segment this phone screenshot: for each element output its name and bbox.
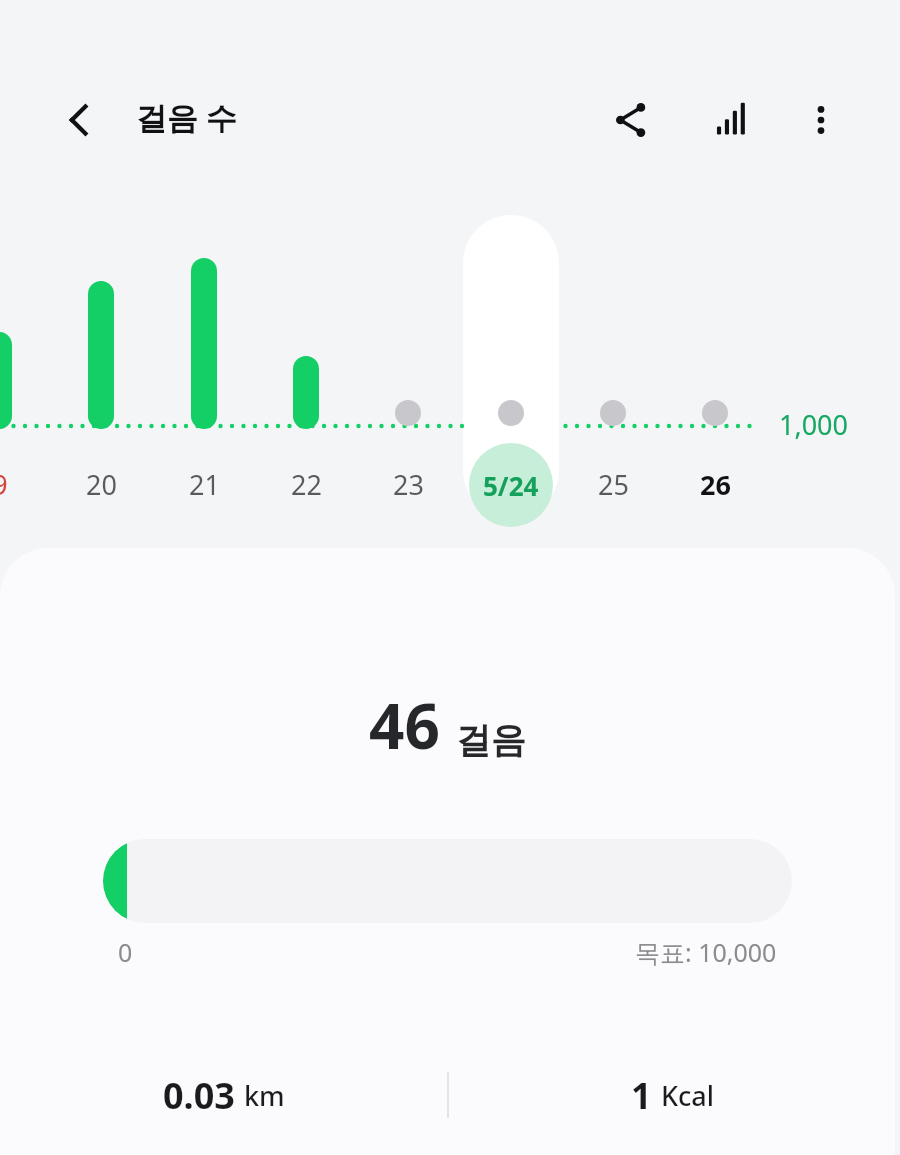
staticText: km <box>244 1077 285 1114</box>
button[interactable]: Share <box>596 85 666 155</box>
button[interactable]: 1 <box>450 1055 895 1135</box>
button[interactable] <box>463 215 559 518</box>
staticText: 21 <box>189 466 220 503</box>
button[interactable]: 26 <box>675 462 755 506</box>
staticText: 46 <box>369 683 440 767</box>
staticText: 0 <box>118 935 133 969</box>
staticText: 걸음 <box>456 718 526 762</box>
button[interactable]: More options <box>786 85 856 155</box>
button[interactable]: Back <box>45 85 115 155</box>
button[interactable]: 0.03 <box>0 1055 448 1135</box>
staticText: 1,000 <box>779 406 849 443</box>
staticText: 22 <box>291 466 322 503</box>
staticText: 26 <box>700 466 731 503</box>
button[interactable]: 9 <box>0 462 40 506</box>
staticText: 9 <box>0 466 8 503</box>
staticText: 20 <box>86 466 117 503</box>
button[interactable]: 25 <box>573 462 653 506</box>
button[interactable]: 20 <box>61 462 141 506</box>
button[interactable]: 21 <box>164 462 244 506</box>
button[interactable] <box>103 839 792 923</box>
button[interactable]: 23 <box>368 462 448 506</box>
staticText: 25 <box>598 466 629 503</box>
staticText: 0.03 <box>163 1071 235 1120</box>
staticText: Kcal <box>661 1077 715 1114</box>
staticText: 걸음 수 <box>136 96 238 138</box>
button[interactable]: Chart <box>696 85 766 155</box>
button[interactable]: 22 <box>266 462 346 506</box>
staticText: 목표: 10,000 <box>635 935 777 969</box>
staticText: 23 <box>393 466 424 503</box>
staticText: 1 <box>631 1071 652 1120</box>
staticText: 5/24 <box>483 468 539 503</box>
